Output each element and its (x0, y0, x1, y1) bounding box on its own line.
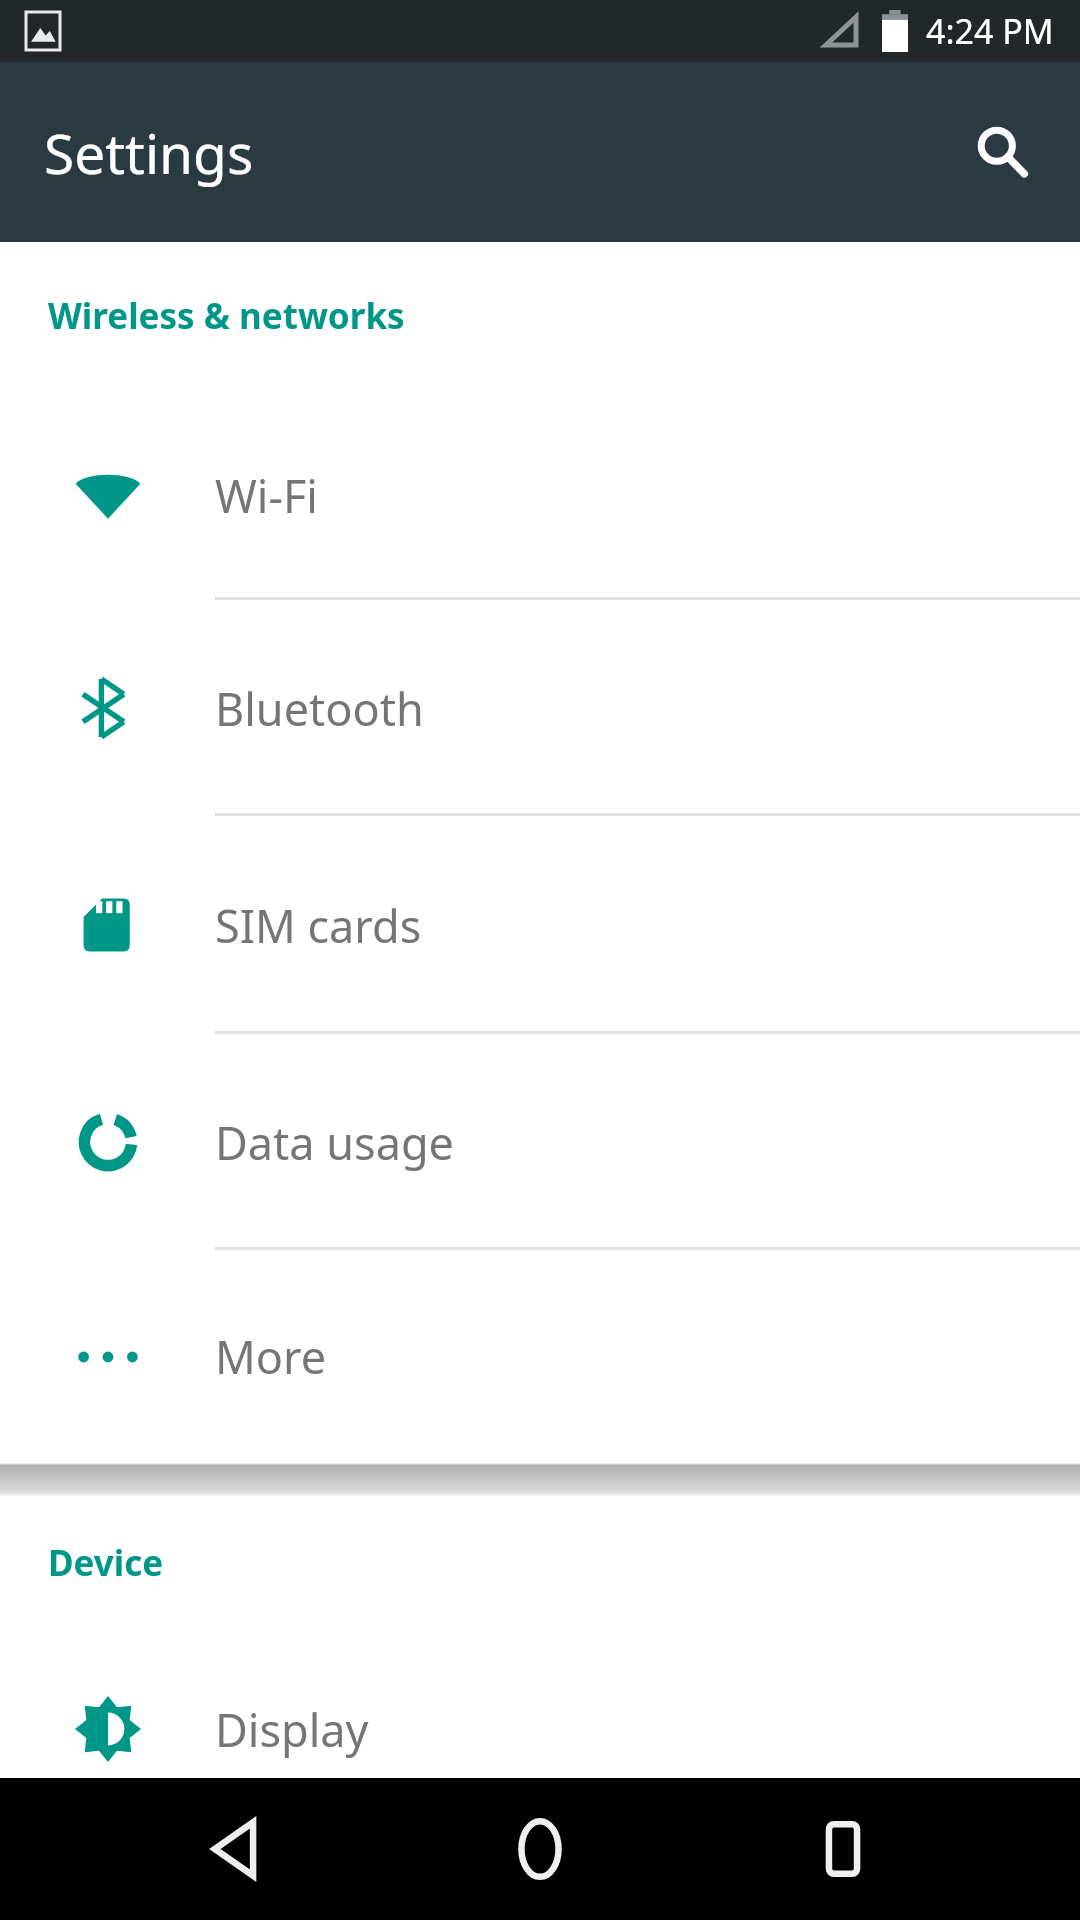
staticText: Data usage (215, 1112, 454, 1173)
button[interactable]: Search (952, 102, 1052, 202)
button[interactable]: Display (0, 1629, 1080, 1829)
staticText: Device (48, 1539, 164, 1587)
staticText: Wi-Fi (215, 465, 318, 526)
button[interactable]: Bluetooth (0, 600, 1080, 816)
staticText: Display (215, 1699, 369, 1760)
button[interactable]: SIM cards (0, 816, 1080, 1034)
button[interactable]: More (0, 1250, 1080, 1463)
button[interactable]: Home (475, 1784, 605, 1914)
staticText: Bluetooth (215, 678, 424, 739)
staticText: 4:24 PM (926, 8, 1054, 54)
staticText: SIM cards (215, 895, 422, 956)
button[interactable]: Wi-Fi (0, 390, 1080, 600)
staticText: More (215, 1326, 327, 1387)
button[interactable]: Back (173, 1784, 303, 1914)
staticText: Settings (44, 115, 254, 190)
button[interactable]: Recent apps (778, 1784, 908, 1914)
staticText: Wireless & networks (48, 292, 405, 340)
button[interactable]: Data usage (0, 1034, 1080, 1250)
